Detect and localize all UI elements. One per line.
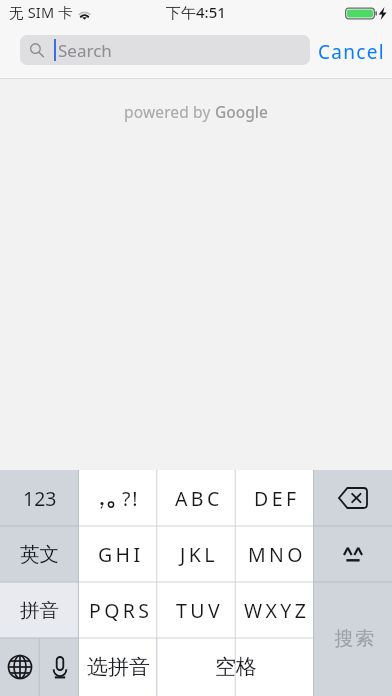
staticText: ?!	[122, 485, 140, 512]
button[interactable]: Voice input	[40, 638, 79, 696]
button[interactable]: Delete	[314, 470, 392, 526]
button[interactable]: DEF	[236, 470, 314, 526]
button[interactable]: 拼音	[0, 582, 79, 638]
button[interactable]: Cancel	[310, 33, 392, 71]
button[interactable]: 选拼音	[79, 638, 157, 696]
button[interactable]: 英文	[0, 526, 79, 582]
staticText: ABC	[175, 485, 223, 512]
staticText: WXYZ	[244, 597, 310, 624]
staticText: 空格	[215, 654, 257, 680]
staticText: 搜索	[334, 627, 375, 651]
button[interactable]: Search	[20, 35, 310, 65]
button[interactable]: 空格	[157, 638, 314, 696]
staticText: 拼音	[20, 598, 59, 623]
staticText: PQRS	[89, 597, 153, 624]
staticText: Google	[215, 101, 268, 122]
staticText: Cancel	[318, 39, 385, 65]
staticText: 下午4:51	[166, 2, 226, 22]
button[interactable]: Switch keyboard	[0, 638, 40, 696]
staticText: JKL	[180, 541, 218, 568]
staticText: MNO	[248, 541, 306, 568]
staticText: Search	[58, 39, 112, 62]
staticText: DEF	[254, 485, 300, 512]
staticText: 123	[23, 485, 57, 512]
button[interactable]: ?!	[79, 470, 158, 526]
button[interactable]: WXYZ	[236, 582, 314, 638]
staticText: 英文	[20, 542, 59, 567]
staticText: GHI	[98, 541, 144, 568]
staticText: TUV	[176, 597, 223, 624]
button[interactable]: Emoji	[314, 526, 392, 582]
button[interactable]: GHI	[79, 526, 158, 582]
staticText: 选拼音	[87, 654, 150, 680]
button[interactable]: PQRS	[79, 582, 158, 638]
staticText: powered by	[124, 101, 215, 122]
button[interactable]: MNO	[236, 526, 314, 582]
button[interactable]: 123	[0, 470, 79, 526]
button[interactable]: TUV	[158, 582, 236, 638]
button[interactable]: ABC	[158, 470, 236, 526]
button[interactable]: JKL	[158, 526, 236, 582]
button[interactable]: 搜索	[314, 582, 392, 696]
staticText: 无 SIM 卡	[9, 2, 73, 22]
